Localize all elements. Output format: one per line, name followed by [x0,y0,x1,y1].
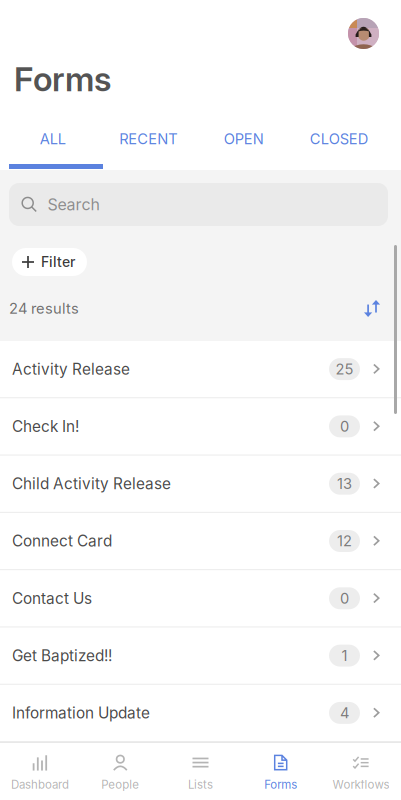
button[interactable]: OPEN [196,130,291,148]
staticText: Dashboard [11,778,69,791]
staticText: 0 [340,417,349,435]
staticText: Search [47,195,99,214]
staticText: Lists [188,778,213,791]
staticText: CLOSED [310,130,369,148]
button[interactable]: Search [9,183,388,226]
staticText: RECENT [119,130,177,148]
staticText: People [101,778,139,791]
button[interactable]: Contact Us [0,570,401,627]
staticText: 0 [340,589,349,607]
staticText: 24 results [9,300,79,317]
staticText: Contact Us [12,589,92,608]
button[interactable]: ALL [5,130,100,148]
staticText: 13 [337,475,352,492]
button[interactable]: Workflows [321,742,401,800]
button[interactable]: Connect Card [0,513,401,570]
staticText: ALL [40,130,66,148]
staticText: OPEN [224,130,264,148]
button[interactable]: Account [348,18,379,49]
button[interactable]: Information Update [0,685,401,742]
button[interactable]: Sort [364,300,381,317]
staticText: Get Baptized!! [12,646,112,665]
button[interactable]: RECENT [100,130,196,148]
button[interactable]: Dashboard [0,742,80,800]
staticText: 4 [340,704,349,722]
staticText: Information Update [12,704,150,722]
button[interactable]: Filter [12,248,87,276]
staticText: 25 [335,360,353,378]
button[interactable]: Child Activity Release [0,455,401,513]
staticText: Forms [14,59,111,99]
button[interactable]: People [80,742,160,800]
staticText: Activity Release [12,360,130,378]
staticText: Workflows [332,778,389,791]
button[interactable]: Check In! [0,398,401,455]
button[interactable]: Lists [160,742,241,800]
staticText: Child Activity Release [12,474,171,493]
staticText: Filter [41,253,75,270]
button[interactable]: Activity Release [0,341,401,398]
button[interactable]: CLOSED [291,130,387,148]
button[interactable]: Get Baptized!! [0,627,401,685]
staticText: Check In! [12,417,79,436]
staticText: Forms [264,778,297,791]
staticText: 1 [341,647,347,664]
staticText: Connect Card [12,532,112,550]
button[interactable]: Forms [241,742,321,800]
staticText: 12 [337,532,352,550]
